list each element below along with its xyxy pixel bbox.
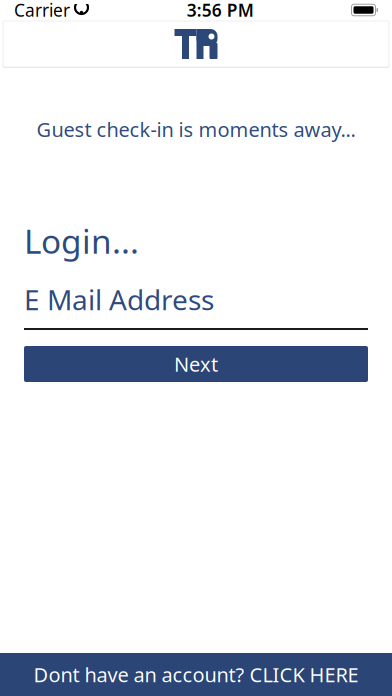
staticText: Carrier xyxy=(14,0,70,21)
staticText: Login... xyxy=(24,219,139,263)
staticText xyxy=(70,0,74,21)
staticText: 3:56 PM xyxy=(187,0,254,21)
button[interactable]: Next xyxy=(24,346,368,382)
staticText: Next xyxy=(174,351,218,377)
staticText: E Mail Address xyxy=(24,281,214,318)
staticText: Dont have an account? CLICK HERE xyxy=(33,661,358,688)
staticText: Guest check-in is moments away... xyxy=(36,116,355,143)
button[interactable]: Dont have an account? CLICK HERE xyxy=(0,653,392,696)
